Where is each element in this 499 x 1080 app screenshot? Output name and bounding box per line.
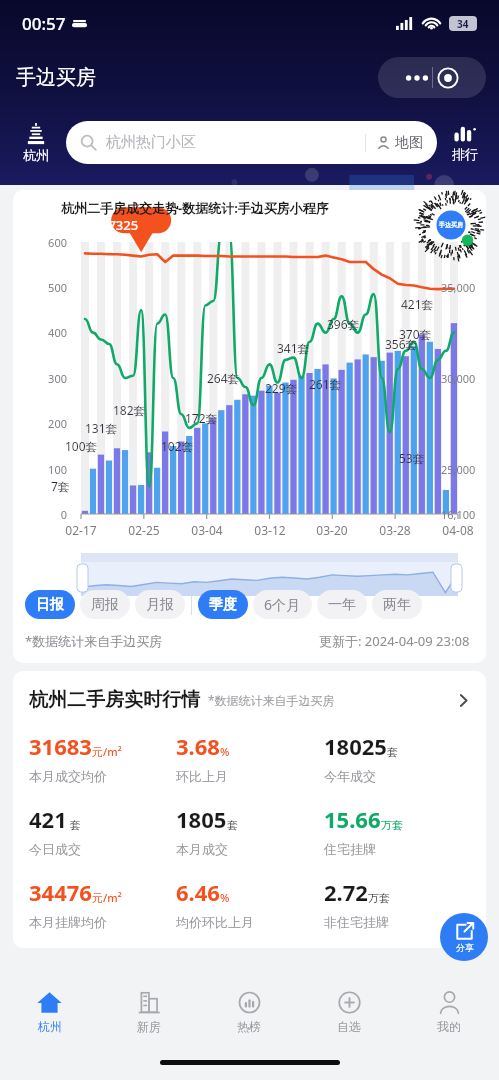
staticText: 非住宅挂牌 (324, 914, 389, 930)
staticText: 16,100 (441, 507, 476, 522)
staticText: 6个月 (264, 595, 301, 614)
button[interactable]: 杭州二手房实时行情 (29, 688, 472, 712)
staticText: 25,000 (441, 462, 476, 477)
staticText: 600 (27, 235, 67, 250)
staticText: 03-20 (302, 522, 362, 538)
staticText: 400 (27, 325, 67, 340)
button[interactable]: 杭州热门小区 (66, 121, 437, 164)
staticText: 0 (27, 507, 67, 522)
staticText: 杭州 (38, 1019, 62, 1034)
staticText: 自选 (337, 1019, 361, 1034)
staticText: 一年 (328, 596, 356, 614)
staticText: 00:57 (22, 12, 66, 35)
staticText: 356套 (385, 336, 418, 352)
button[interactable]: 杭州 (6, 123, 66, 163)
staticText: 分享 (456, 942, 474, 953)
staticText: 421套 (401, 296, 434, 312)
staticText: 环比上月 (176, 768, 228, 784)
staticText: 日报 (36, 596, 64, 614)
staticText: *数据统计来自手边买房 (25, 632, 163, 650)
staticText: 今日成交 (29, 841, 81, 857)
staticText: 杭州二手房成交走势-数据统计:手边买房小程序 (61, 199, 329, 217)
staticText: 万套 (368, 891, 390, 905)
staticText: 31683 (29, 731, 92, 761)
staticText: 套 (67, 817, 81, 832)
button[interactable]: 月报 (135, 590, 185, 619)
staticText: 元/m² (92, 744, 122, 759)
staticText: 本月成交均价 (29, 768, 107, 784)
button[interactable]: 新房 (99, 978, 199, 1044)
staticText: 万套 (381, 818, 403, 832)
button[interactable]: 两年 (372, 590, 422, 619)
button[interactable]: 分享 Share (440, 913, 488, 961)
staticText: 03-04 (177, 522, 237, 538)
staticText: 3.68 (176, 731, 220, 761)
staticText: 套 (227, 818, 238, 832)
staticText: 03-12 (240, 522, 300, 538)
staticText: 新房 (137, 1019, 161, 1034)
button[interactable]: More options (378, 57, 486, 98)
staticText: 排行 (452, 146, 478, 162)
staticText: 182套 (113, 402, 146, 418)
staticText: 地图 (395, 134, 423, 152)
staticText: 月报 (146, 596, 174, 614)
staticText: 两年 (383, 596, 411, 614)
staticText: 本月挂牌均价 (29, 914, 107, 930)
staticText: 396套 (327, 316, 360, 332)
staticText: 15.66 (324, 804, 381, 834)
staticText: 1805 (176, 804, 227, 834)
staticText: 住宅挂牌 (324, 841, 376, 857)
staticText: 今年成交 (324, 768, 376, 784)
button[interactable]: 杭州 (0, 978, 99, 1044)
staticText: 229套 (265, 380, 298, 396)
staticText: 7套 (51, 478, 70, 494)
other: More options (402, 73, 432, 83)
staticText: *数据统计来自手边买房 (208, 692, 335, 708)
button[interactable]: 周报 (80, 590, 130, 619)
staticText: 341套 (277, 340, 310, 356)
staticText: 杭州热门小区 (106, 133, 196, 152)
staticText: 172套 (185, 410, 218, 426)
staticText: 421 (29, 804, 67, 834)
staticText: 30,000 (441, 371, 476, 386)
staticText: 261套 (309, 376, 342, 392)
staticText: 35,000 (441, 280, 476, 295)
staticText: 手边买房 (439, 221, 463, 229)
staticText: 更新于: 2024-04-09 23:08 (319, 632, 470, 650)
staticText: % (220, 744, 230, 759)
button[interactable]: 热榜 (199, 978, 299, 1044)
button[interactable]: 一年 (317, 590, 367, 619)
staticText: 131套 (85, 420, 118, 436)
staticText: 03-28 (365, 522, 425, 538)
staticText: 102套 (161, 438, 194, 454)
staticText: 热榜 (237, 1019, 261, 1034)
staticText: 100 (27, 462, 67, 477)
staticText: 04-08 (428, 522, 486, 538)
other: Close (433, 63, 463, 93)
staticText: 34 (457, 17, 469, 31)
staticText: 500 (27, 280, 67, 295)
button[interactable]: 季度 (198, 590, 248, 619)
button[interactable]: 我的 (399, 978, 499, 1044)
staticText: 100套 (65, 438, 98, 454)
staticText: 本月成交 (176, 841, 228, 857)
staticText: 手边买房 (16, 65, 96, 90)
staticText: 53套 (399, 450, 425, 466)
button[interactable]: 日报 (25, 590, 75, 619)
staticText: 套 (387, 745, 398, 759)
staticText: 264套 (207, 370, 240, 386)
staticText: 37325 (101, 216, 139, 234)
button[interactable]: 6个月 (253, 590, 312, 619)
other: View details (455, 692, 472, 709)
staticText: 300 (27, 371, 67, 386)
button[interactable]: 排行 (437, 124, 493, 162)
staticText: 均价环比上月 (176, 914, 254, 930)
button[interactable]: 自选 (299, 978, 399, 1044)
staticText: 200 (27, 416, 67, 431)
staticText: 370套 (399, 326, 432, 342)
staticText: 周报 (91, 596, 119, 614)
staticText: 元/m² (92, 890, 122, 905)
staticText: 季度 (209, 596, 237, 614)
staticText: 我的 (437, 1019, 461, 1034)
staticText: % (220, 890, 230, 905)
